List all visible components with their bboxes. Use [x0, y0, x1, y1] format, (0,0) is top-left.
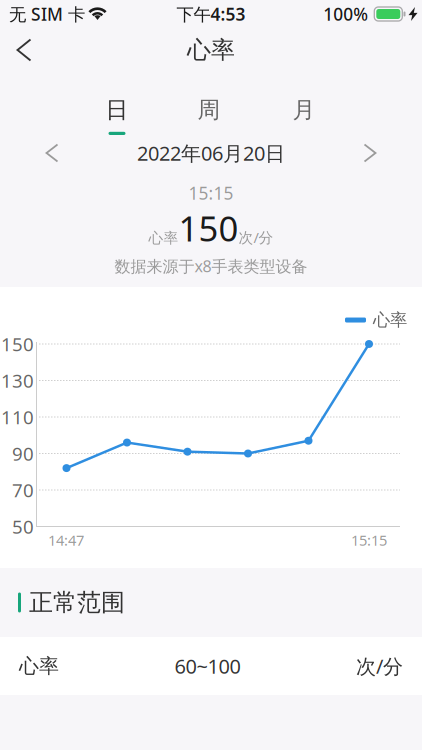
staticText: 2022年06月20日: [137, 140, 285, 166]
button[interactable]: 月: [273, 99, 335, 135]
staticText: 下午4:53: [176, 2, 245, 25]
button[interactable]: 周: [178, 99, 240, 135]
staticText: 月: [292, 96, 315, 124]
button[interactable]: Back: [2, 28, 46, 72]
staticText: 110: [1, 405, 34, 429]
staticText: 60~100: [174, 653, 240, 679]
button[interactable]: Next day: [355, 138, 385, 168]
staticText: 次/分: [356, 653, 403, 679]
staticText: 周: [197, 96, 220, 124]
staticText: 70: [12, 478, 34, 502]
staticText: 150: [1, 332, 34, 356]
staticText: 心率: [187, 35, 235, 65]
staticText: 心率: [373, 309, 407, 331]
staticText: 次/分: [238, 227, 273, 247]
staticText: 15:15: [188, 181, 233, 204]
staticText: 心率: [148, 229, 178, 247]
staticText: 数据来源于x8手表类型设备: [114, 255, 307, 277]
staticText: 无 SIM 卡: [9, 2, 85, 25]
staticText: 14:47: [48, 530, 84, 550]
staticText: 日: [105, 96, 128, 124]
staticText: 正常范围: [29, 588, 125, 617]
staticText: 130: [1, 368, 34, 393]
staticText: 15:15: [351, 530, 387, 550]
button[interactable]: Previous day: [37, 138, 67, 168]
staticText: 100%: [323, 2, 368, 25]
button[interactable]: 日: [86, 99, 148, 135]
staticText: 90: [12, 441, 34, 466]
staticText: 150: [178, 205, 238, 251]
staticText: 心率: [19, 654, 59, 678]
staticText: 50: [12, 514, 34, 539]
